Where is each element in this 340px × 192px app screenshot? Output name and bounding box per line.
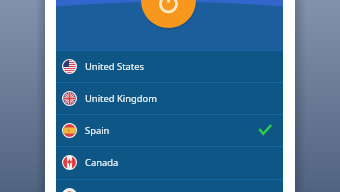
- button[interactable]: Japan: [56, 179, 283, 192]
- staticText: United States: [85, 60, 144, 73]
- button[interactable]: Canada: [56, 146, 283, 178]
- staticText: Spain: [85, 124, 110, 137]
- staticText: Canada: [85, 156, 119, 169]
- button[interactable]: Spain: [56, 114, 283, 146]
- button[interactable]: United States: [56, 50, 283, 82]
- staticText: United Kingdom: [85, 92, 158, 105]
- button[interactable]: Connect: [141, 0, 196, 28]
- button[interactable]: United Kingdom: [56, 82, 283, 114]
